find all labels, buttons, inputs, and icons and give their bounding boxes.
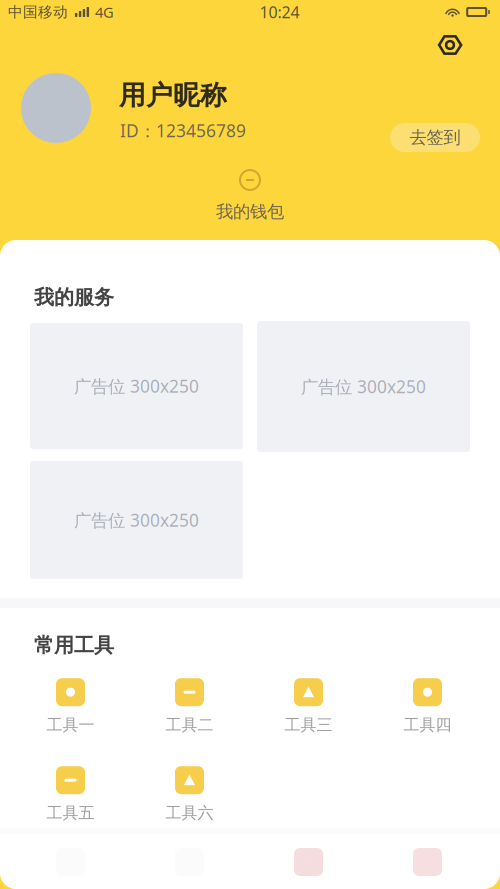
staticText: 常用工具: [34, 633, 114, 658]
staticText: 广告位 300x250: [301, 375, 426, 398]
button[interactable]: 工具五: [11, 760, 130, 828]
button[interactable]: 工具四: [368, 672, 487, 740]
button[interactable]: 广告位 300x250: [257, 321, 470, 452]
button[interactable]: 广告位 300x250: [30, 323, 243, 449]
button[interactable]: 工具三: [249, 672, 368, 740]
button[interactable]: 工具六: [130, 760, 249, 828]
staticText: 广告位 300x250: [74, 508, 199, 531]
staticText: 10:24: [259, 1, 299, 23]
staticText: 工具四: [403, 715, 451, 735]
staticText: 4G: [95, 2, 114, 22]
button[interactable]: 去签到: [390, 123, 480, 152]
staticText: 用户昵称: [119, 79, 227, 112]
button[interactable]: 头像: [21, 73, 91, 143]
button[interactable]: 工具一: [11, 672, 130, 740]
staticText: 工具六: [165, 803, 213, 823]
staticText: 工具三: [284, 715, 332, 735]
staticText: ID：123456789: [120, 119, 246, 142]
staticText: 工具五: [46, 803, 94, 823]
button[interactable]: 我的钱包: [0, 170, 500, 222]
staticText: 工具二: [165, 715, 213, 735]
staticText: 工具一: [46, 715, 94, 735]
staticText: 广告位 300x250: [74, 374, 199, 397]
staticText: 去签到: [409, 127, 460, 148]
staticText: 中国移动: [8, 3, 68, 21]
button[interactable]: 设置: [437, 32, 463, 58]
staticText: 我的钱包: [216, 201, 284, 222]
button[interactable]: 广告位 300x250: [30, 461, 243, 579]
button[interactable]: 工具二: [130, 672, 249, 740]
staticText: 我的服务: [34, 285, 114, 310]
